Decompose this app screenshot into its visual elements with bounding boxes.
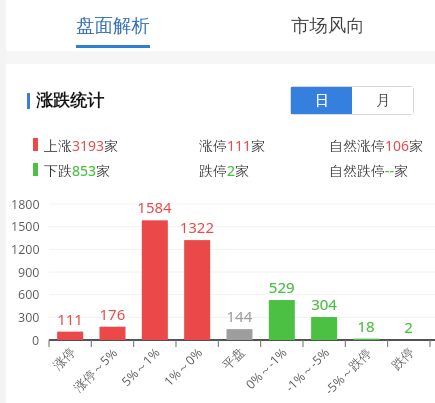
staticText: 自然跌停--家: [329, 161, 409, 177]
button[interactable]: 月: [352, 87, 413, 114]
button[interactable]: 市场风向: [220, 0, 435, 51]
button[interactable]: 盘面解析: [6, 0, 220, 51]
staticText: 日: [315, 92, 329, 110]
button[interactable]: 日: [291, 87, 352, 114]
staticText: 市场风向: [291, 14, 365, 37]
staticText: 盘面解析: [76, 14, 150, 37]
staticText: 上涨3193家: [44, 136, 119, 152]
staticText: 下跌853家: [44, 161, 111, 177]
staticText: 自然涨停106家: [329, 136, 424, 152]
staticText: 涨跌统计: [36, 90, 104, 111]
staticText: 跌停2家: [199, 161, 250, 177]
staticText: 月: [376, 92, 390, 110]
staticText: 涨停111家: [199, 136, 266, 152]
